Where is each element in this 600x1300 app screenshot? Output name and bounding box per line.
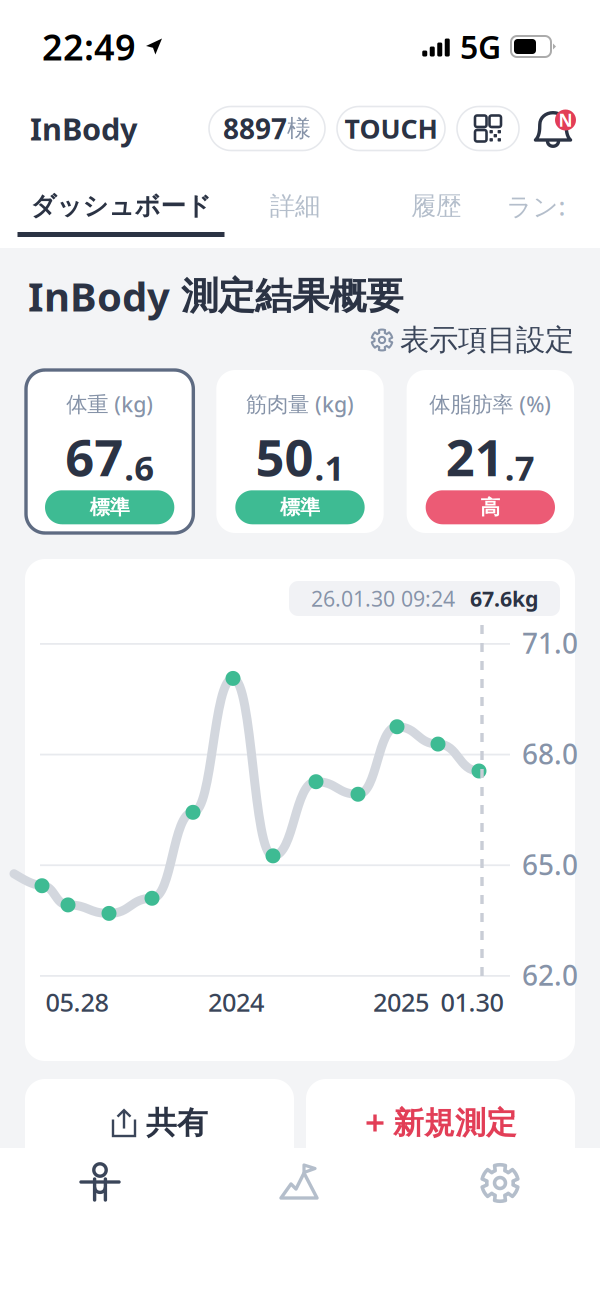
staticText: 62.0 xyxy=(522,956,578,994)
staticText: 2024 xyxy=(208,985,264,1019)
staticText: 01.30 xyxy=(440,985,503,1019)
staticText: 22:49 xyxy=(42,23,136,70)
staticText: 68.0 xyxy=(522,735,578,772)
button[interactable]: 新規測定 xyxy=(306,1079,575,1167)
staticText: .1 xyxy=(314,444,344,490)
button[interactable]: ラン: xyxy=(506,175,600,237)
staticText: 表示項目設定 xyxy=(400,322,574,358)
staticText: 5G xyxy=(460,25,501,68)
staticText: 測定結果概要 xyxy=(170,273,403,319)
staticText: InBody xyxy=(28,269,170,322)
staticText: 高 xyxy=(480,495,500,520)
button[interactable]: Settings xyxy=(400,1148,600,1218)
staticText: 体重 (kg) xyxy=(66,390,153,418)
button[interactable]: ダッシュボード xyxy=(17,175,224,237)
button[interactable]: Goals xyxy=(200,1148,400,1218)
staticText: 履歴 xyxy=(411,190,461,221)
button[interactable]: Body xyxy=(0,1148,200,1218)
button[interactable]: 8897 xyxy=(209,106,325,150)
staticText: .7 xyxy=(505,444,535,490)
button[interactable]: 体脂肪率 (%) xyxy=(407,370,574,533)
staticText: 21 xyxy=(446,423,504,490)
staticText: InBody xyxy=(30,108,138,149)
button[interactable]: QR code xyxy=(457,106,519,150)
staticText: ダッシュボード xyxy=(30,190,211,221)
staticText: 体脂肪率 (%) xyxy=(429,390,551,418)
staticText: 詳細 xyxy=(270,190,320,221)
staticText: 新規測定 xyxy=(393,1104,517,1142)
staticText: 67.6kg xyxy=(470,584,538,613)
staticText: 標準 xyxy=(280,495,320,520)
staticText: 筋肉量 (kg) xyxy=(246,390,354,418)
staticText: 71.0 xyxy=(522,624,578,662)
button[interactable]: 詳細 xyxy=(224,175,365,237)
staticText: ラン: xyxy=(506,189,565,223)
staticText: 05.28 xyxy=(45,985,108,1019)
staticText: 共有 xyxy=(146,1104,208,1142)
staticText: .6 xyxy=(124,444,154,490)
staticText: 50 xyxy=(255,423,313,490)
staticText: 2025 xyxy=(373,985,429,1019)
staticText: TOUCH xyxy=(344,111,437,146)
button[interactable]: 筋肉量 (kg) xyxy=(216,370,384,533)
button[interactable]: 表示項目設定 xyxy=(371,324,574,356)
button[interactable]: 体重 (kg) xyxy=(26,370,193,533)
staticText: N xyxy=(558,108,572,131)
button[interactable]: 履歴 xyxy=(365,175,506,237)
staticText: 様 xyxy=(287,114,311,143)
staticText: 67 xyxy=(65,423,123,490)
staticText: 8897 xyxy=(223,110,287,147)
button[interactable]: Notifications xyxy=(531,106,575,150)
staticText: 標準 xyxy=(90,495,130,520)
staticText: 65.0 xyxy=(522,846,578,883)
button[interactable]: 共有 xyxy=(25,1079,294,1167)
button[interactable]: TOUCH xyxy=(337,106,445,150)
staticText: 26.01.30 09:24 xyxy=(311,584,455,613)
